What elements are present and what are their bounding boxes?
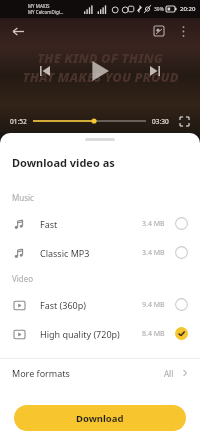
staticText: All [164,368,174,379]
button[interactable]: Fullscreen [176,113,192,129]
button[interactable]: Cast [150,22,168,40]
button[interactable]: Back [8,21,28,41]
staticText: MY MAXIS [28,3,50,9]
button[interactable]: Play [84,55,116,87]
button[interactable]: Fast [0,209,200,238]
button[interactable]: Classic MP3 [0,238,200,267]
staticText: Video [12,273,34,284]
button[interactable]: Previous [34,60,56,82]
staticText: Music [12,192,34,203]
staticText: Fast [40,218,58,230]
staticText: 8.4 MB [142,329,165,339]
button[interactable]: More formats [0,359,200,387]
staticText: High quality (720p) [40,328,120,340]
staticText: 01:52 [10,117,27,126]
button[interactable]: More options [174,22,192,40]
staticText: Classic MP3 [40,247,90,259]
staticText: Download video as [12,155,115,170]
staticText: MY CelcomDigi... [28,9,64,15]
staticText: Fast (360p) [40,299,86,311]
button[interactable]: High quality (720p) [0,319,200,348]
staticText: 39% [154,6,164,13]
staticText: 3.4 MB [142,248,165,258]
staticText: More formats [12,367,70,379]
staticText: 9.4 MB [142,300,165,310]
button[interactable]: Fast (360p) [0,290,200,319]
staticText: 3.4 MB [142,219,165,229]
staticText: Download [76,412,124,425]
staticText: THAT MAKES YOU PROUD [22,68,179,86]
staticText: 20:20 [180,5,196,13]
staticText: 03:30 [152,117,169,126]
button[interactable]: Next [144,60,166,82]
button[interactable]: Download [14,405,186,431]
staticText: THE KIND OF THING [37,49,163,67]
